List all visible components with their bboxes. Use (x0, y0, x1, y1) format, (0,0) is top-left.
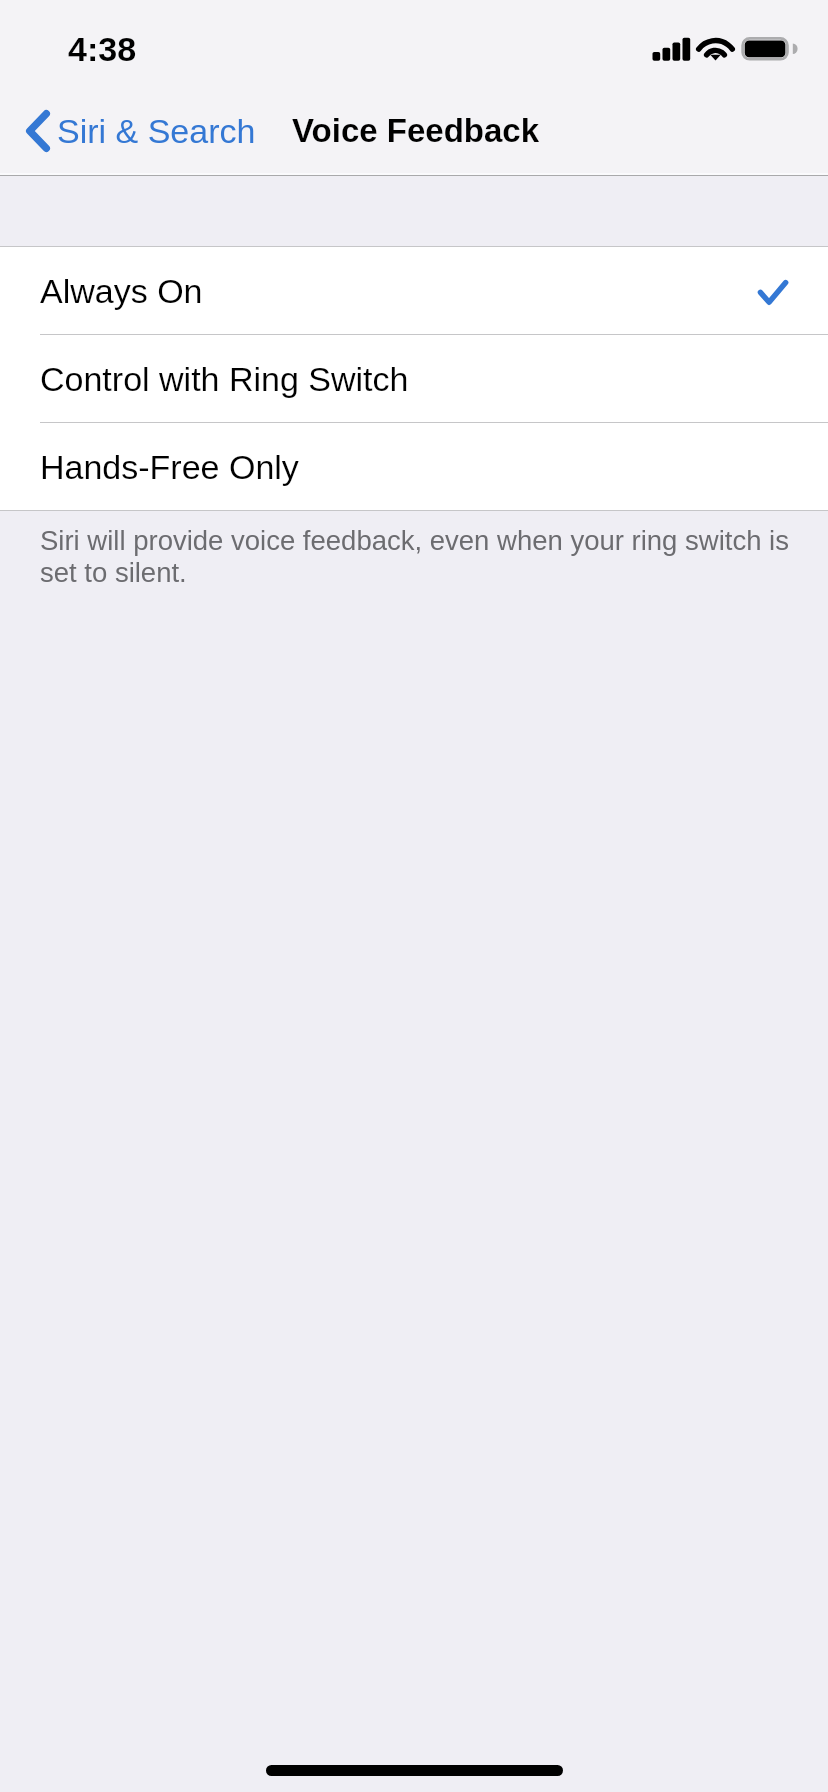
staticText: 4:38 (68, 30, 137, 68)
button[interactable]: Always On (0, 247, 828, 334)
staticText: Voice Feedback (292, 112, 540, 149)
button[interactable]: Hands-Free Only (0, 423, 828, 510)
staticText: Siri & Search (57, 112, 256, 150)
button[interactable]: Control with Ring Switch (0, 335, 828, 422)
button[interactable]: Back to Siri & Search (0, 102, 270, 160)
staticText: Hands-Free Only (40, 448, 299, 486)
staticText: Siri will provide voice feedback, even w… (40, 525, 789, 587)
staticText: Always On (40, 272, 203, 310)
staticText: Control with Ring Switch (40, 360, 409, 398)
other: Cellular, Wi-Fi and battery status (0, 0, 828, 100)
